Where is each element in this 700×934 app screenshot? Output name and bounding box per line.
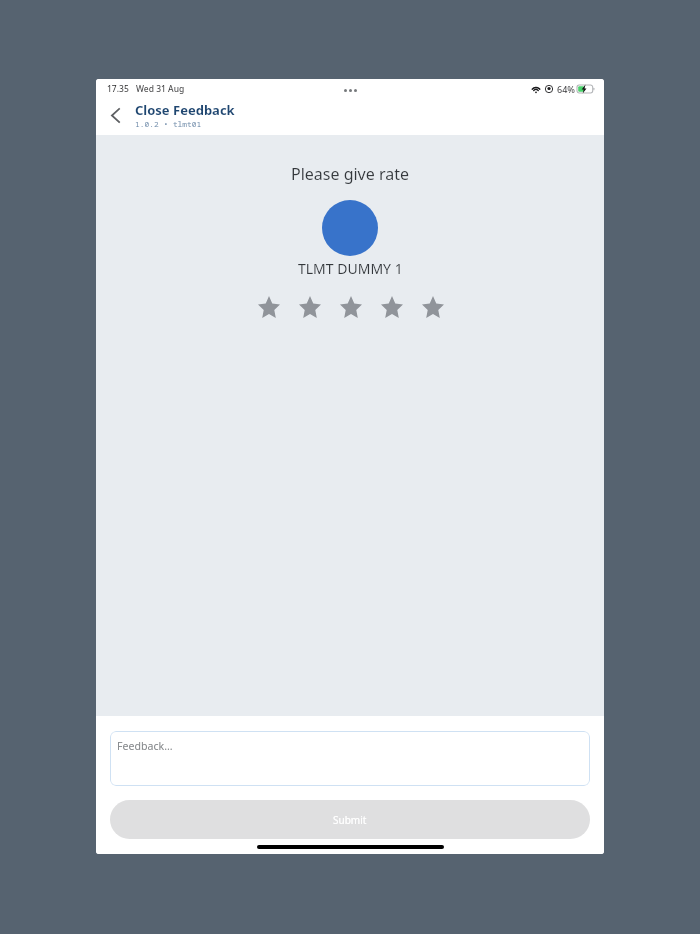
button[interactable]: Rate 1 stars bbox=[248, 292, 289, 322]
button[interactable]: Rate 5 stars bbox=[412, 292, 453, 322]
staticText: Close Feedback bbox=[135, 101, 235, 119]
button[interactable]: Rate 2 stars bbox=[289, 292, 330, 322]
staticText: 17.35 bbox=[107, 83, 129, 95]
button[interactable]: Back bbox=[96, 102, 133, 134]
staticText: Submit bbox=[333, 813, 367, 827]
staticText: Feedback... bbox=[117, 739, 173, 753]
button[interactable]: Feedback... bbox=[110, 731, 590, 786]
button[interactable]: Rate 3 stars bbox=[330, 292, 371, 322]
staticText: Wed 31 Aug bbox=[136, 83, 185, 95]
button[interactable]: Submit bbox=[110, 800, 590, 839]
staticText: 1.0.2 • tlmt01 bbox=[135, 119, 202, 130]
button[interactable]: Rate 4 stars bbox=[371, 292, 412, 322]
staticText: Please give rate bbox=[291, 163, 410, 185]
staticText: TLMT DUMMY 1 bbox=[298, 259, 403, 278]
staticText: 64% bbox=[557, 83, 575, 95]
